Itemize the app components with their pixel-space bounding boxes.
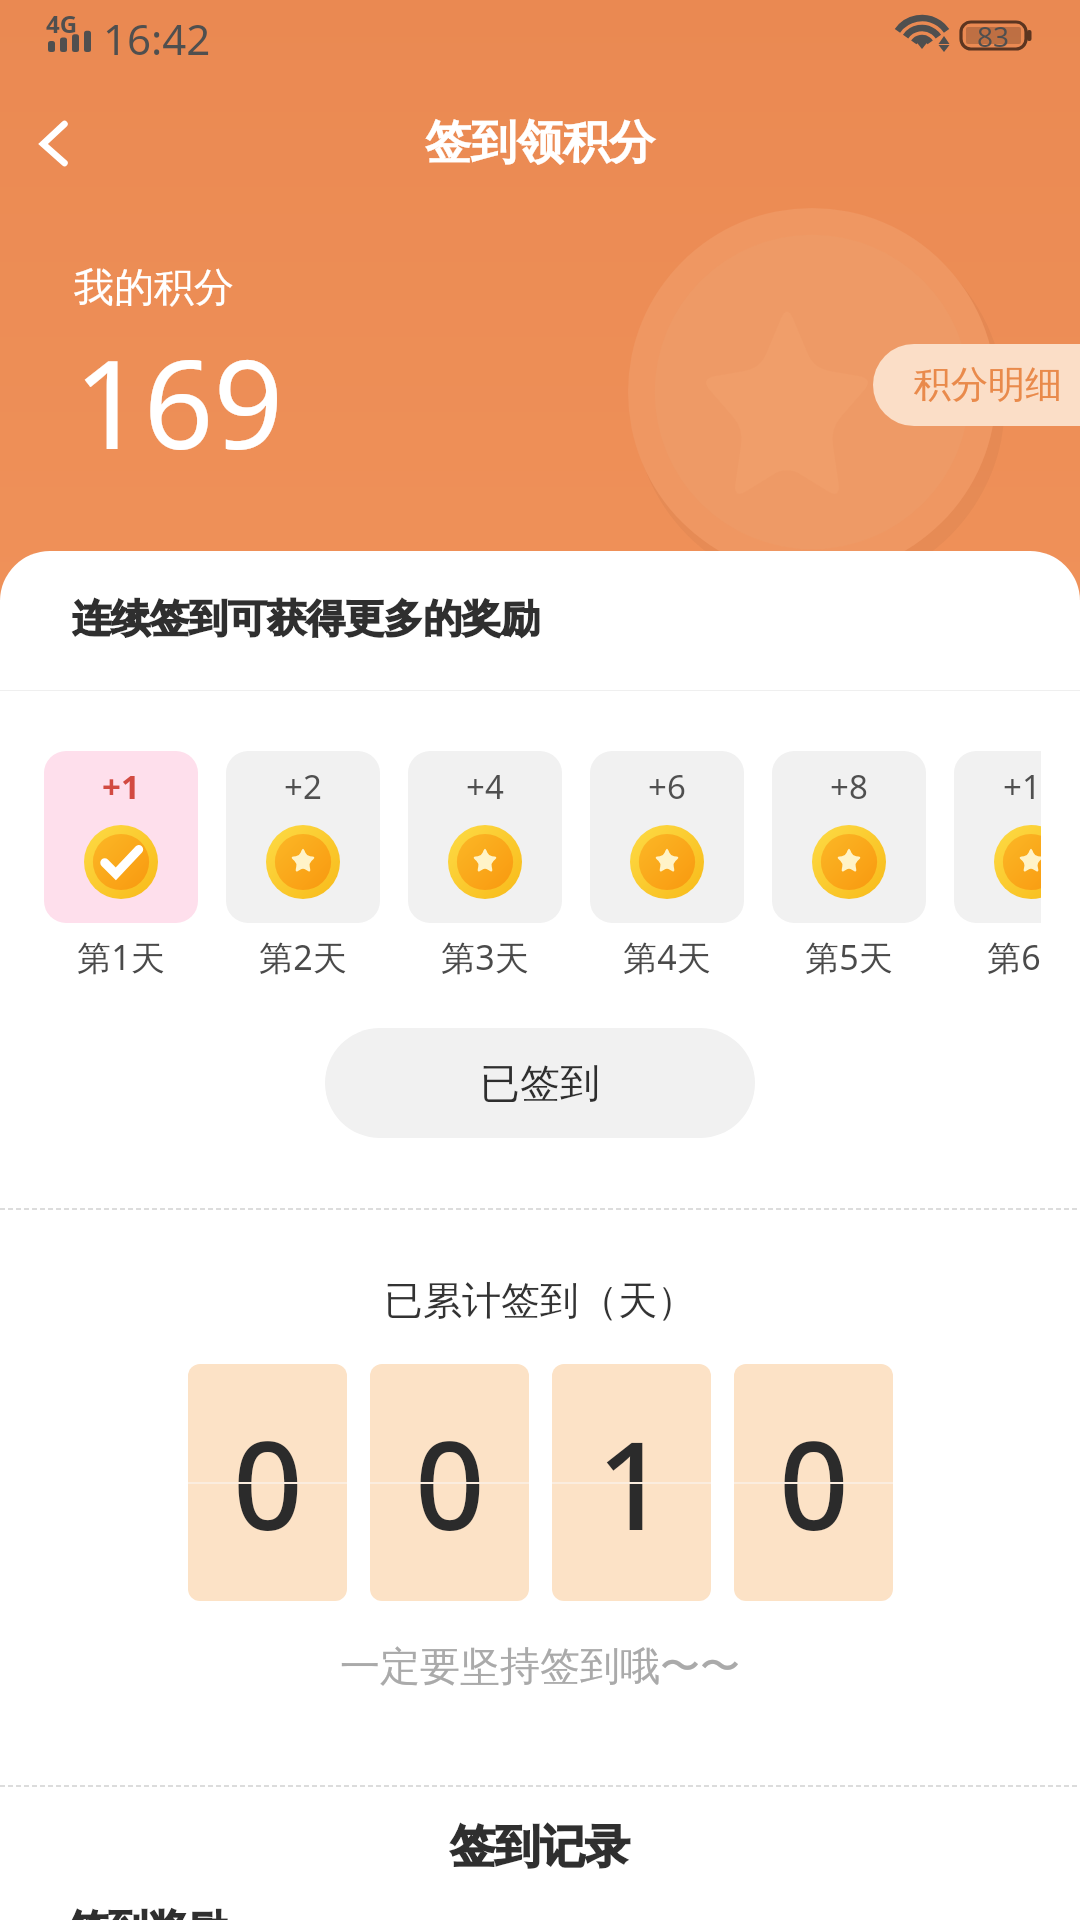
staticText: +10 [1003,764,1041,809]
staticText: 16:42 [103,10,211,67]
staticText: 我的积分 [74,262,234,312]
staticText: 第6天 [954,934,1041,980]
staticText: 签到奖励 [68,1904,228,1920]
staticText: 0 [779,1400,849,1566]
button[interactable]: +4 [408,751,562,923]
staticText: +2 [284,764,322,809]
button[interactable]: +8 [772,751,926,923]
staticText: 连续签到可获得更多的奖励 [72,594,540,643]
staticText: 4G [46,7,78,40]
button[interactable]: +10 [954,751,1041,923]
staticText: 第4天 [590,934,744,980]
staticText: 第3天 [408,934,562,980]
button[interactable]: +6 [590,751,744,923]
staticText: 已签到 [480,1058,600,1108]
staticText: +8 [830,764,868,809]
staticText: +4 [466,764,504,809]
staticText: +1 [102,764,140,809]
button[interactable]: 已签到 [325,1028,755,1138]
staticText: 83 [977,17,1010,55]
staticText: 第1天 [44,934,198,980]
staticText: 第2天 [226,934,380,980]
staticText: 积分明细 [914,361,1062,408]
staticText: 一定要坚持签到哦〜〜 [0,1641,1080,1691]
staticText: 第5天 [772,934,926,980]
button[interactable]: +2 [226,751,380,923]
staticText: 1 [597,1400,667,1566]
staticText: +6 [648,764,686,809]
staticText: 已累计签到（天） [0,1276,1080,1325]
button[interactable]: Back [6,97,98,189]
staticText: 169 [74,319,284,485]
button[interactable]: 积分明细 [873,344,1080,426]
staticText: 签到记录 [0,1819,1080,1876]
button[interactable]: +1 [44,751,198,923]
staticText: 签到领积分 [425,114,655,172]
staticText: 0 [415,1400,485,1566]
staticText: 0 [233,1400,303,1566]
